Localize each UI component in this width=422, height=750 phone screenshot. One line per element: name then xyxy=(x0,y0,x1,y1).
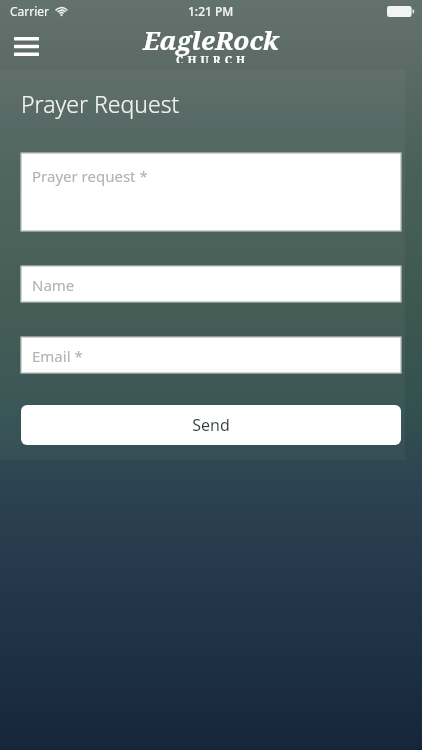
staticText: Email * xyxy=(32,346,83,366)
staticText: Carrier xyxy=(10,3,50,19)
staticText: Prayer Request xyxy=(21,88,180,119)
staticText: Name xyxy=(32,275,75,295)
button[interactable]: Name xyxy=(21,266,401,302)
button[interactable]: Send xyxy=(21,405,401,445)
button[interactable]: Menu xyxy=(5,25,47,67)
staticText: C H U R C H xyxy=(176,52,246,63)
staticText: Send xyxy=(192,414,230,436)
staticText: 1:21 PM xyxy=(188,3,234,19)
button[interactable]: Prayer request * xyxy=(21,153,401,231)
staticText: Prayer request * xyxy=(32,166,148,186)
staticText: EagleRock xyxy=(143,22,279,57)
button[interactable]: Email * xyxy=(21,337,401,373)
